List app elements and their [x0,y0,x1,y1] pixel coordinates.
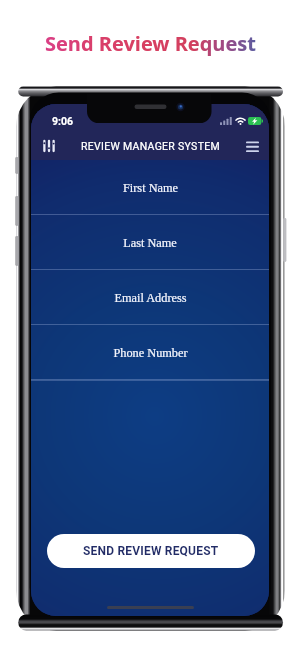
staticText: SEND REVIEW REQUEST [83,544,219,558]
staticText: Phone Number [113,346,188,360]
staticText: Email Address [114,291,187,305]
button[interactable]: First Name [31,160,269,215]
button[interactable]: Email Address [31,270,269,325]
button[interactable]: Open navigation menu [241,135,263,157]
button[interactable]: Last Name [31,215,269,270]
staticText: Last Name [123,236,177,250]
staticText: 9:06 [52,115,74,127]
staticText: Send Review Request [45,30,256,57]
staticText: First Name [123,181,178,195]
button[interactable]: SEND REVIEW REQUEST [47,534,255,568]
staticText: REVIEW MANAGER SYSTEM [81,140,220,152]
button[interactable]: Filter settings [37,134,61,158]
button[interactable]: Phone Number [31,325,269,380]
